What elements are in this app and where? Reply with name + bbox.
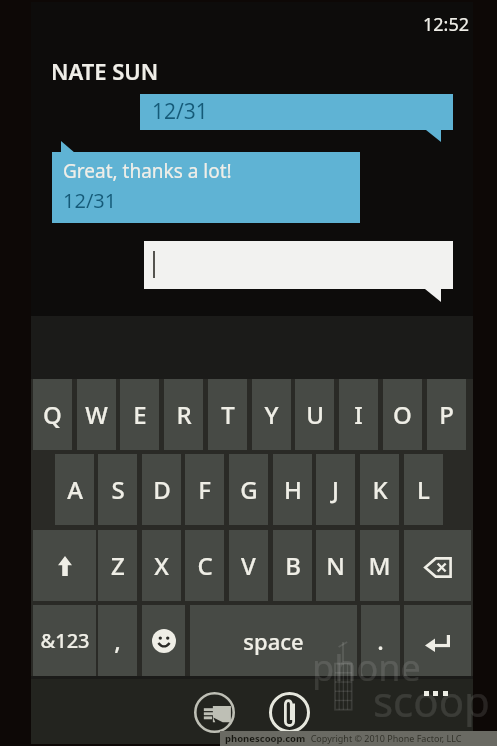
staticText: 12/31 <box>63 187 117 214</box>
staticText: W <box>85 398 108 431</box>
button[interactable]: F <box>185 454 224 525</box>
button[interactable]: H <box>273 454 312 525</box>
staticText: Z <box>111 549 125 582</box>
staticText: B <box>285 549 301 582</box>
staticText: J <box>332 473 339 506</box>
button[interactable]: Z <box>98 530 137 601</box>
staticText: X <box>154 549 169 582</box>
button[interactable] <box>144 241 453 289</box>
button[interactable]: Great, thanks a lot! <box>52 152 360 223</box>
button[interactable]: Enter <box>404 605 471 676</box>
button[interactable]: E <box>120 379 159 450</box>
staticText: V <box>241 549 256 582</box>
staticText: K <box>372 473 388 506</box>
button[interactable]: N <box>316 530 355 601</box>
staticText: F <box>198 473 211 506</box>
staticText: Y <box>264 398 279 431</box>
button[interactable]: A <box>55 454 94 525</box>
button[interactable]: J <box>316 454 355 525</box>
staticText: E <box>133 398 147 431</box>
staticText: . <box>377 624 384 657</box>
staticText: U <box>306 398 324 431</box>
button[interactable]: U <box>295 379 334 450</box>
button[interactable]: K <box>360 454 399 525</box>
staticText: R <box>176 398 192 431</box>
button[interactable]: Backspace <box>404 530 471 601</box>
staticText: NATE SUN <box>51 56 159 86</box>
button[interactable]: Attach <box>266 689 312 735</box>
staticText: space <box>243 626 304 656</box>
button[interactable]: , <box>98 605 137 676</box>
staticText: Q <box>43 398 62 431</box>
staticText: S <box>111 473 125 506</box>
staticText: &123 <box>40 627 90 654</box>
staticText: A <box>67 473 83 506</box>
button[interactable]: R <box>164 379 203 450</box>
staticText: 12/31 <box>152 97 208 126</box>
staticText: , <box>114 624 121 657</box>
button[interactable]: More options <box>414 682 458 706</box>
button[interactable]: G <box>229 454 268 525</box>
button[interactable]: D <box>142 454 181 525</box>
button[interactable]: T <box>208 379 247 450</box>
button[interactable]: . <box>361 605 400 676</box>
staticText: Great, thanks a lot! <box>63 158 232 184</box>
button[interactable]: I <box>339 379 378 450</box>
staticText: P <box>439 398 454 431</box>
button[interactable]: 12/31 <box>140 94 453 130</box>
button[interactable]: Shift <box>33 530 96 601</box>
button[interactable]: P <box>427 379 466 450</box>
button[interactable]: M <box>360 530 399 601</box>
staticText: O <box>393 398 412 431</box>
staticText: Copyright © 2010 Phone Factor, LLC <box>306 732 462 744</box>
button[interactable]: B <box>273 530 312 601</box>
button[interactable]: S <box>98 454 137 525</box>
button[interactable]: Emoji <box>142 605 185 676</box>
button[interactable]: Q <box>33 379 72 450</box>
staticText: D <box>153 473 171 506</box>
button[interactable]: C <box>185 530 224 601</box>
button[interactable]: space <box>190 605 357 676</box>
staticText: phonescoop.com <box>225 732 306 745</box>
staticText: phone <box>312 643 421 692</box>
staticText: T <box>221 398 235 431</box>
staticText: L <box>417 473 430 506</box>
button[interactable]: Y <box>252 379 291 450</box>
button[interactable]: L <box>404 454 443 525</box>
staticText: G <box>240 473 258 506</box>
staticText: C <box>197 549 213 582</box>
button[interactable]: W <box>77 379 116 450</box>
button[interactable]: &123 <box>33 605 96 676</box>
staticText: M <box>368 549 391 582</box>
staticText: 12:52 <box>423 12 470 37</box>
button[interactable]: V <box>229 530 268 601</box>
staticText: scoop <box>373 672 490 729</box>
button[interactable]: X <box>142 530 181 601</box>
staticText: N <box>326 549 345 582</box>
button[interactable]: O <box>383 379 422 450</box>
staticText: H <box>284 473 302 506</box>
button[interactable]: New message <box>191 689 237 735</box>
staticText: I <box>354 398 363 431</box>
